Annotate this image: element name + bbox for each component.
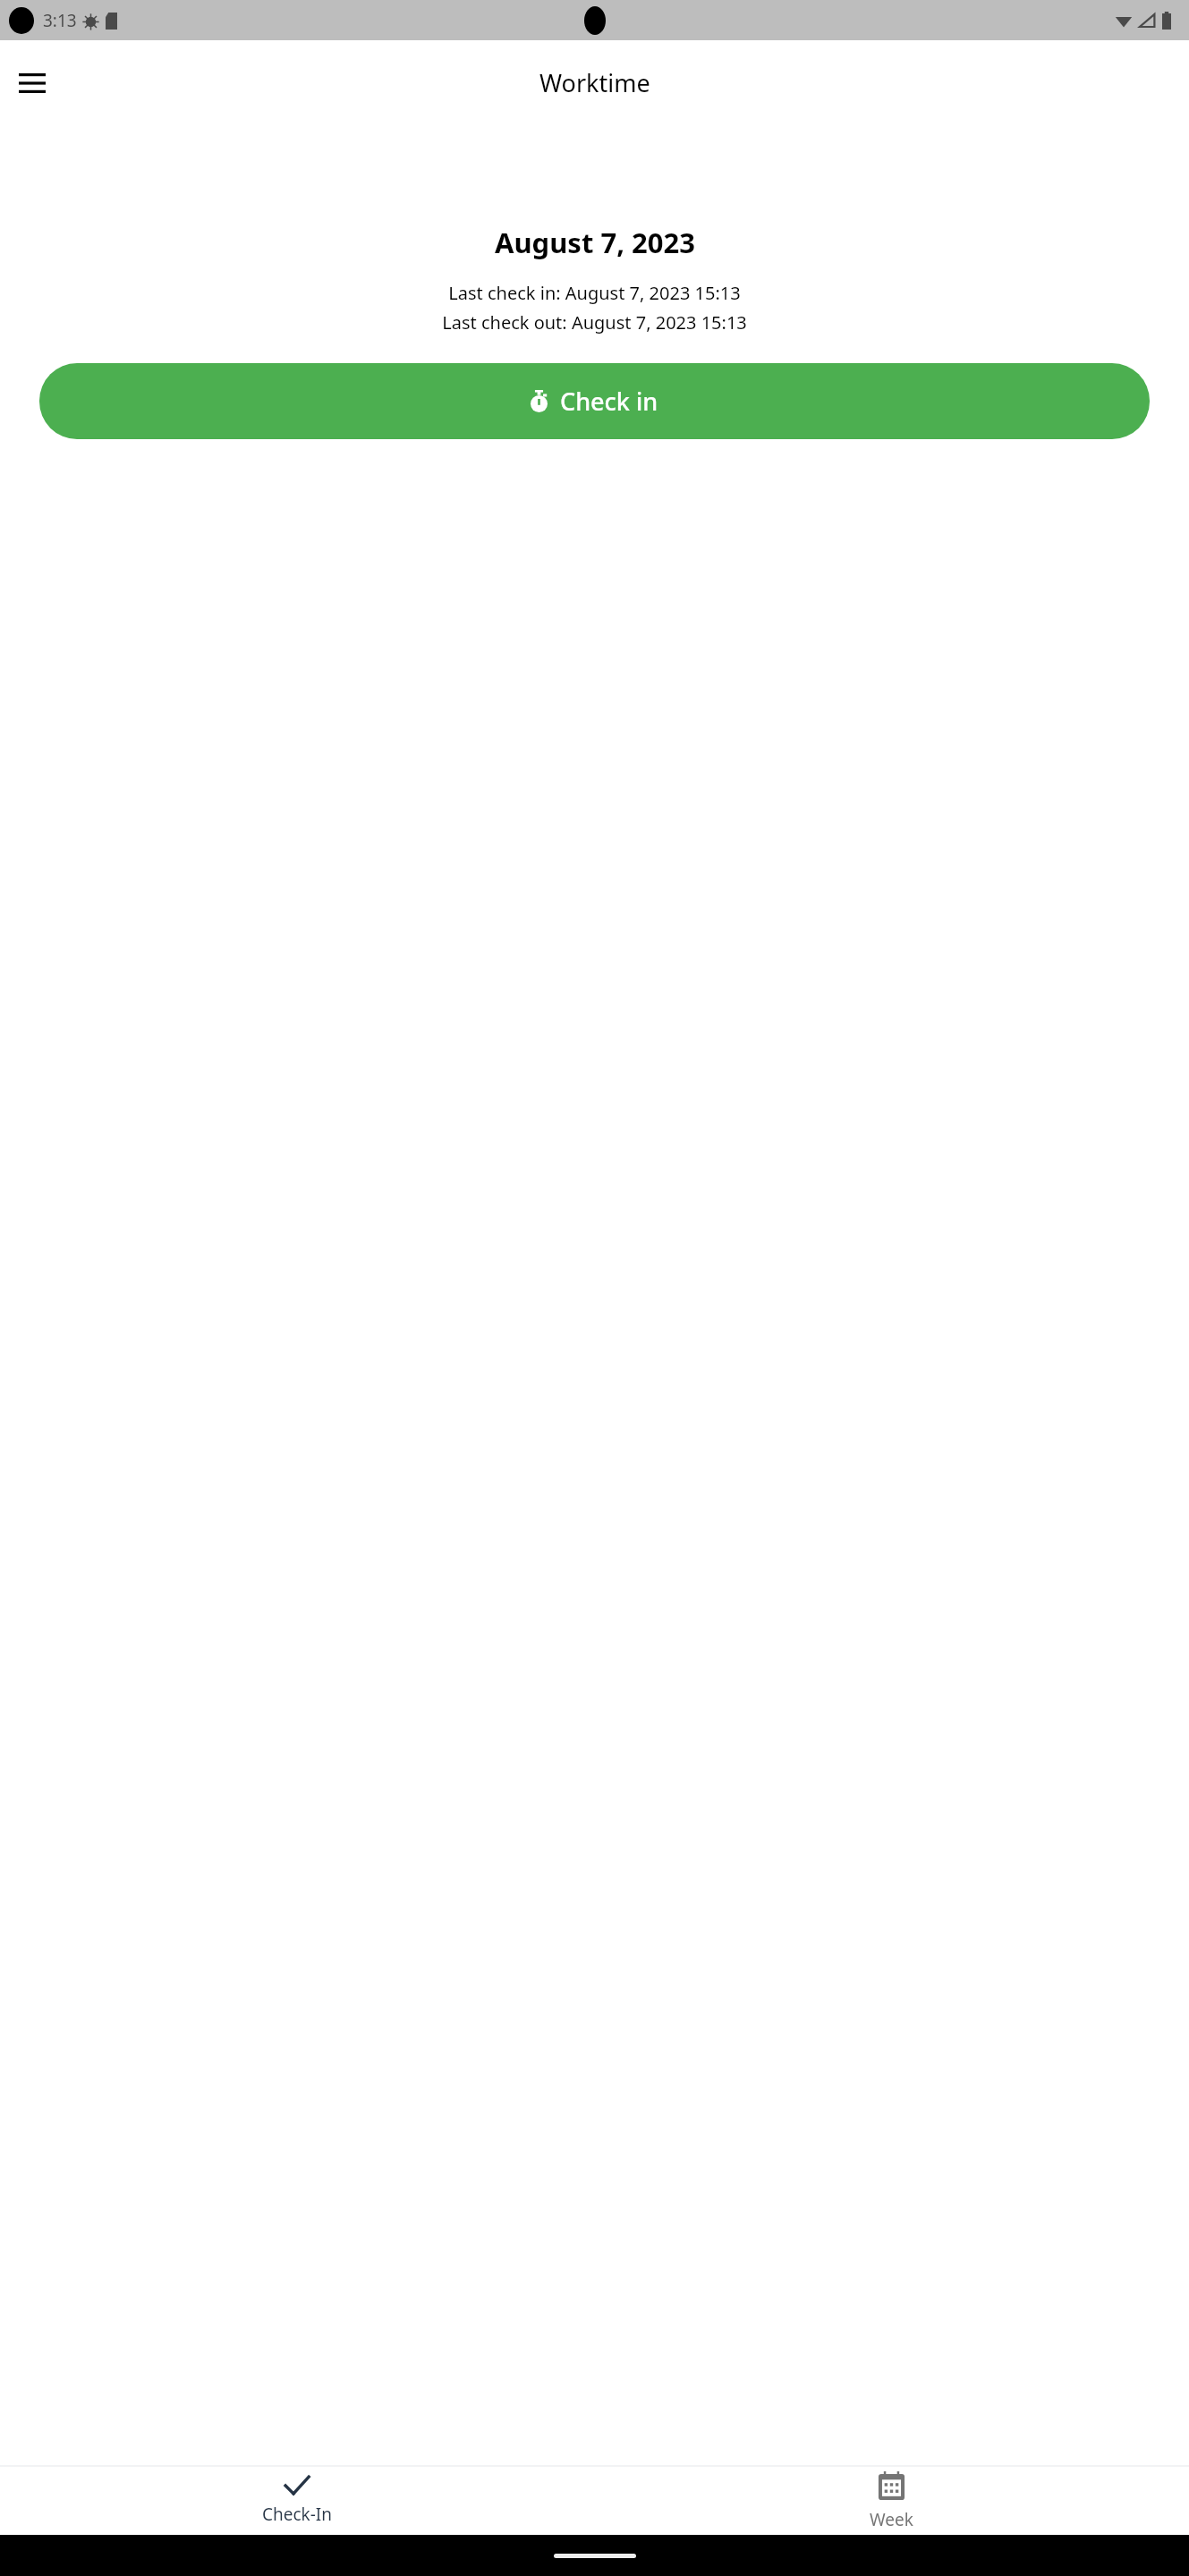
button[interactable]: Open navigation menu bbox=[5, 56, 59, 110]
staticText: Check in bbox=[560, 385, 658, 418]
staticText: Last check out: August 7, 2023 15:13 bbox=[442, 310, 747, 335]
staticText: Check-In bbox=[262, 2503, 333, 2526]
staticText: August 7, 2023 bbox=[495, 224, 695, 261]
staticText: 3:13 bbox=[43, 9, 77, 32]
button[interactable]: Check in bbox=[39, 363, 1150, 439]
staticText: Week bbox=[870, 2508, 913, 2530]
button[interactable]: Week bbox=[594, 2467, 1189, 2535]
button[interactable]: Check-In bbox=[0, 2471, 594, 2530]
staticText: Worktime bbox=[539, 66, 650, 99]
staticText: Last check in: August 7, 2023 15:13 bbox=[448, 281, 741, 305]
